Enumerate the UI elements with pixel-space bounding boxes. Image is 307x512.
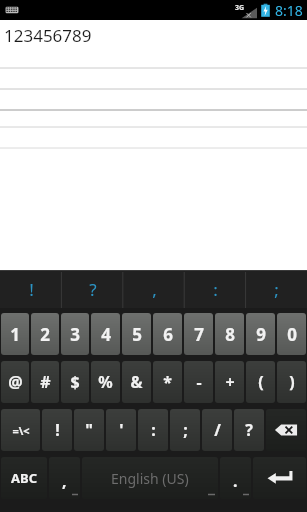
staticText: .: [233, 470, 238, 492]
button[interactable]: ): [277, 361, 306, 403]
staticText: -: [196, 371, 202, 393]
staticText: 0: [287, 323, 297, 346]
staticText: 6: [163, 323, 173, 346]
staticText: 3G: [235, 3, 245, 13]
staticText: =\<: [12, 423, 30, 438]
button[interactable]: /: [202, 409, 232, 451]
button[interactable]: &: [122, 361, 151, 403]
staticText: @: [8, 371, 23, 393]
staticText: *: [163, 371, 172, 393]
button[interactable]: :: [185, 270, 246, 308]
staticText: ": [85, 419, 93, 441]
button[interactable]: Enter: [253, 457, 306, 499]
button[interactable]: (: [246, 361, 275, 403]
button[interactable]: %: [91, 361, 120, 403]
staticText: ': [119, 419, 124, 441]
staticText: 1: [10, 323, 20, 346]
staticText: ABC: [11, 469, 37, 487]
staticText: &: [130, 371, 143, 393]
staticText: ?: [89, 278, 97, 301]
staticText: (: [258, 371, 264, 393]
button[interactable]: :: [138, 409, 168, 451]
staticText: 123456789: [4, 24, 92, 47]
staticText: 8: [225, 323, 235, 346]
staticText: #: [40, 371, 51, 393]
staticText: 8:18: [275, 1, 303, 20]
button[interactable]: 9: [246, 313, 275, 355]
button[interactable]: 8: [215, 313, 244, 355]
button[interactable]: =\<: [1, 409, 40, 451]
button[interactable]: 6: [153, 313, 182, 355]
button[interactable]: !: [0, 270, 62, 308]
button[interactable]: ?: [234, 409, 264, 451]
button[interactable]: ;: [170, 409, 200, 451]
button[interactable]: 5: [122, 313, 151, 355]
button[interactable]: English (US): [82, 457, 218, 499]
button[interactable]: Backspace: [266, 409, 306, 451]
button[interactable]: #: [31, 361, 59, 403]
button[interactable]: 3: [61, 313, 89, 355]
button[interactable]: *: [153, 361, 182, 403]
staticText: ;: [183, 419, 188, 441]
button[interactable]: ,: [49, 457, 80, 499]
button[interactable]: 7: [184, 313, 213, 355]
button[interactable]: ABC: [1, 457, 47, 499]
staticText: :: [151, 419, 156, 441]
staticText: +: [225, 371, 235, 393]
button[interactable]: 0: [277, 313, 306, 355]
staticText: !: [29, 278, 34, 301]
button[interactable]: ;: [246, 270, 307, 308]
button[interactable]: -: [184, 361, 213, 403]
staticText: 7: [194, 323, 204, 346]
button[interactable]: ?: [62, 270, 124, 308]
staticText: 2: [40, 323, 50, 346]
staticText: ,: [152, 278, 157, 301]
button[interactable]: !: [42, 409, 72, 451]
staticText: English (US): [111, 469, 189, 488]
staticText: 9: [256, 323, 266, 346]
button[interactable]: .: [220, 457, 251, 499]
staticText: 3: [70, 323, 80, 346]
button[interactable]: ": [74, 409, 104, 451]
button[interactable]: ': [106, 409, 136, 451]
staticText: $: [70, 371, 80, 393]
staticText: ?: [245, 419, 253, 441]
button[interactable]: 4: [91, 313, 120, 355]
staticText: ): [289, 371, 295, 393]
staticText: ;: [274, 278, 279, 301]
button[interactable]: ,: [124, 270, 185, 308]
button[interactable]: $: [61, 361, 89, 403]
staticText: %: [98, 371, 113, 393]
staticText: !: [55, 419, 60, 441]
staticText: 4: [101, 323, 111, 346]
staticText: 5: [132, 323, 142, 346]
button[interactable]: 1: [1, 313, 29, 355]
button[interactable]: 123456789: [0, 20, 307, 270]
staticText: /: [214, 419, 221, 441]
button[interactable]: 2: [31, 313, 59, 355]
button[interactable]: @: [1, 361, 29, 403]
staticText: :: [213, 278, 218, 301]
button[interactable]: +: [215, 361, 244, 403]
staticText: ,: [62, 470, 67, 492]
